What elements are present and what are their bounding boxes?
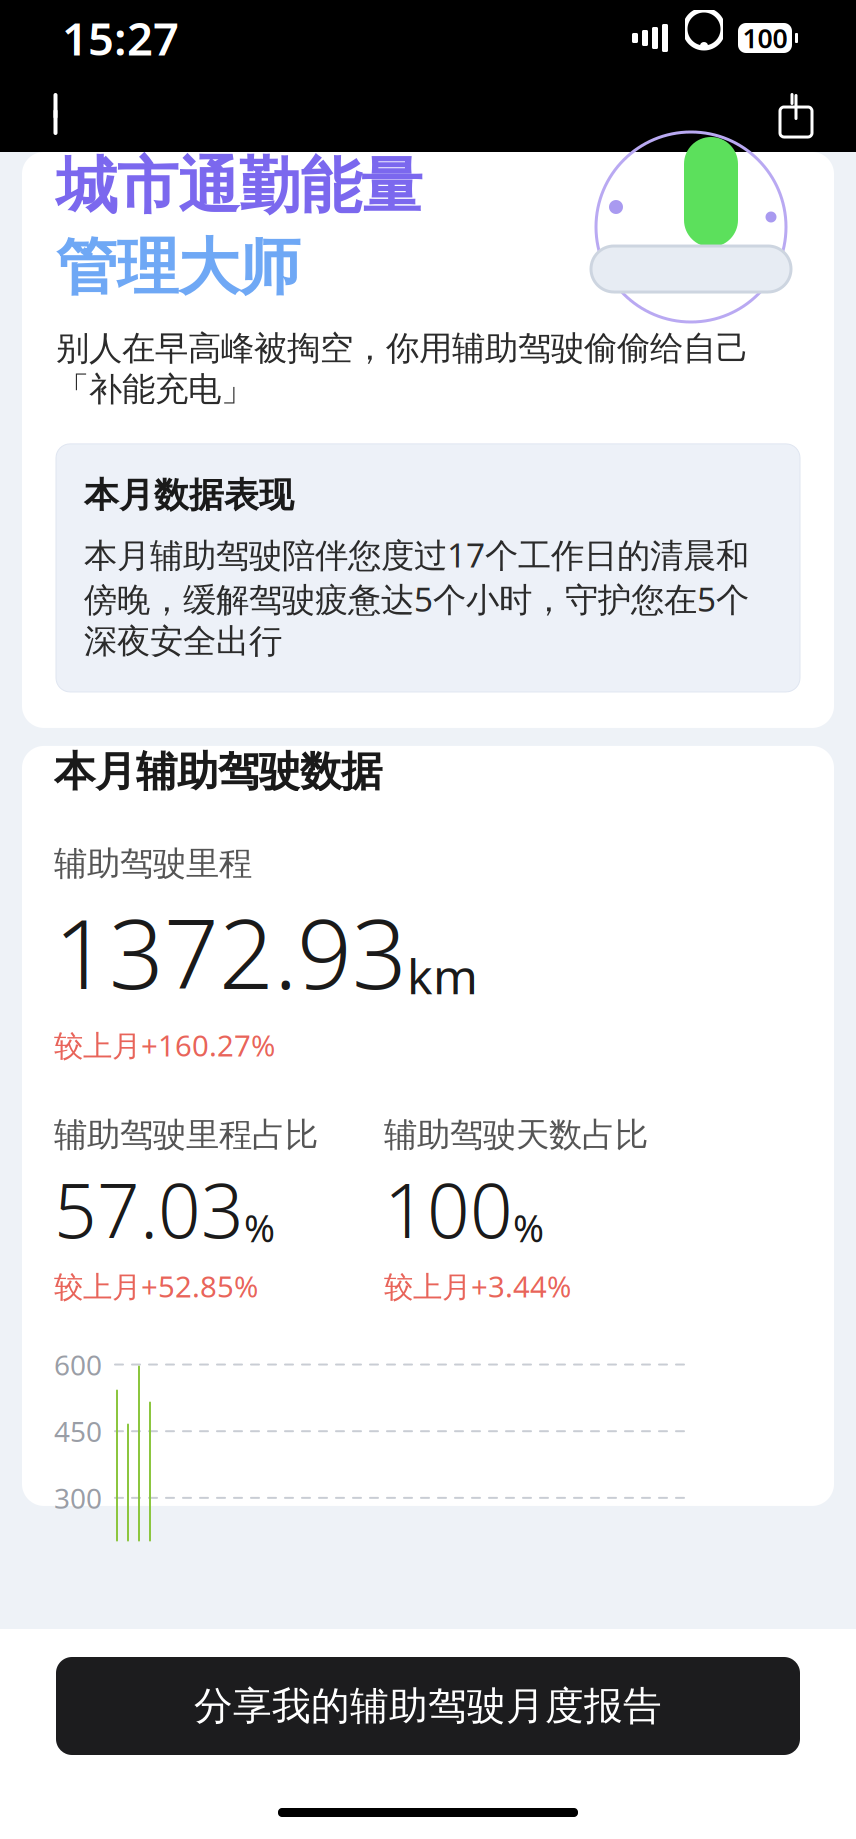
staticText: 辅助驾驶里程占比 (54, 1114, 318, 1155)
staticText: 57.03 (54, 1159, 244, 1259)
staticText: 本月辅助驾驶数据 (54, 746, 382, 797)
staticText: 较上月+52.85% (54, 1267, 258, 1306)
staticText: 城市通勤能量 (56, 149, 422, 224)
button[interactable]: 分享我的辅助驾驶月度报告 (56, 1657, 800, 1755)
staticText: 300 (54, 1479, 102, 1516)
staticText: 100 (742, 20, 787, 56)
staticText: 本月辅助驾驶陪伴您度过17个工作日的清晨和傍晚，缓解驾驶疲惫达5个小时，守护您在… (84, 532, 749, 662)
button[interactable]: 分享 (758, 76, 834, 152)
staticText: 本月数据表现 (84, 474, 294, 516)
staticText: 100 (384, 1159, 513, 1259)
staticText: 较上月+3.44% (384, 1267, 571, 1306)
staticText: % (244, 1203, 275, 1253)
staticText: km (407, 944, 478, 1007)
staticText: 别人在早高峰被掏空，你用辅助驾驶偷偷给自己「补能充电」 (56, 328, 749, 410)
staticText: % (513, 1203, 544, 1253)
staticText: 辅助驾驶天数占比 (384, 1114, 648, 1155)
staticText: 辅助驾驶里程 (54, 843, 252, 884)
button[interactable]: 返回 (22, 76, 98, 152)
staticText: 1372.93 (54, 888, 407, 1015)
staticText: 管理大师 (56, 230, 300, 305)
staticText: 450 (54, 1413, 102, 1450)
staticText: 600 (54, 1346, 102, 1383)
staticText: 15:27 (62, 8, 179, 68)
staticText: 分享我的辅助驾驶月度报告 (194, 1682, 662, 1730)
staticText: 较上月+160.27% (54, 1025, 275, 1064)
